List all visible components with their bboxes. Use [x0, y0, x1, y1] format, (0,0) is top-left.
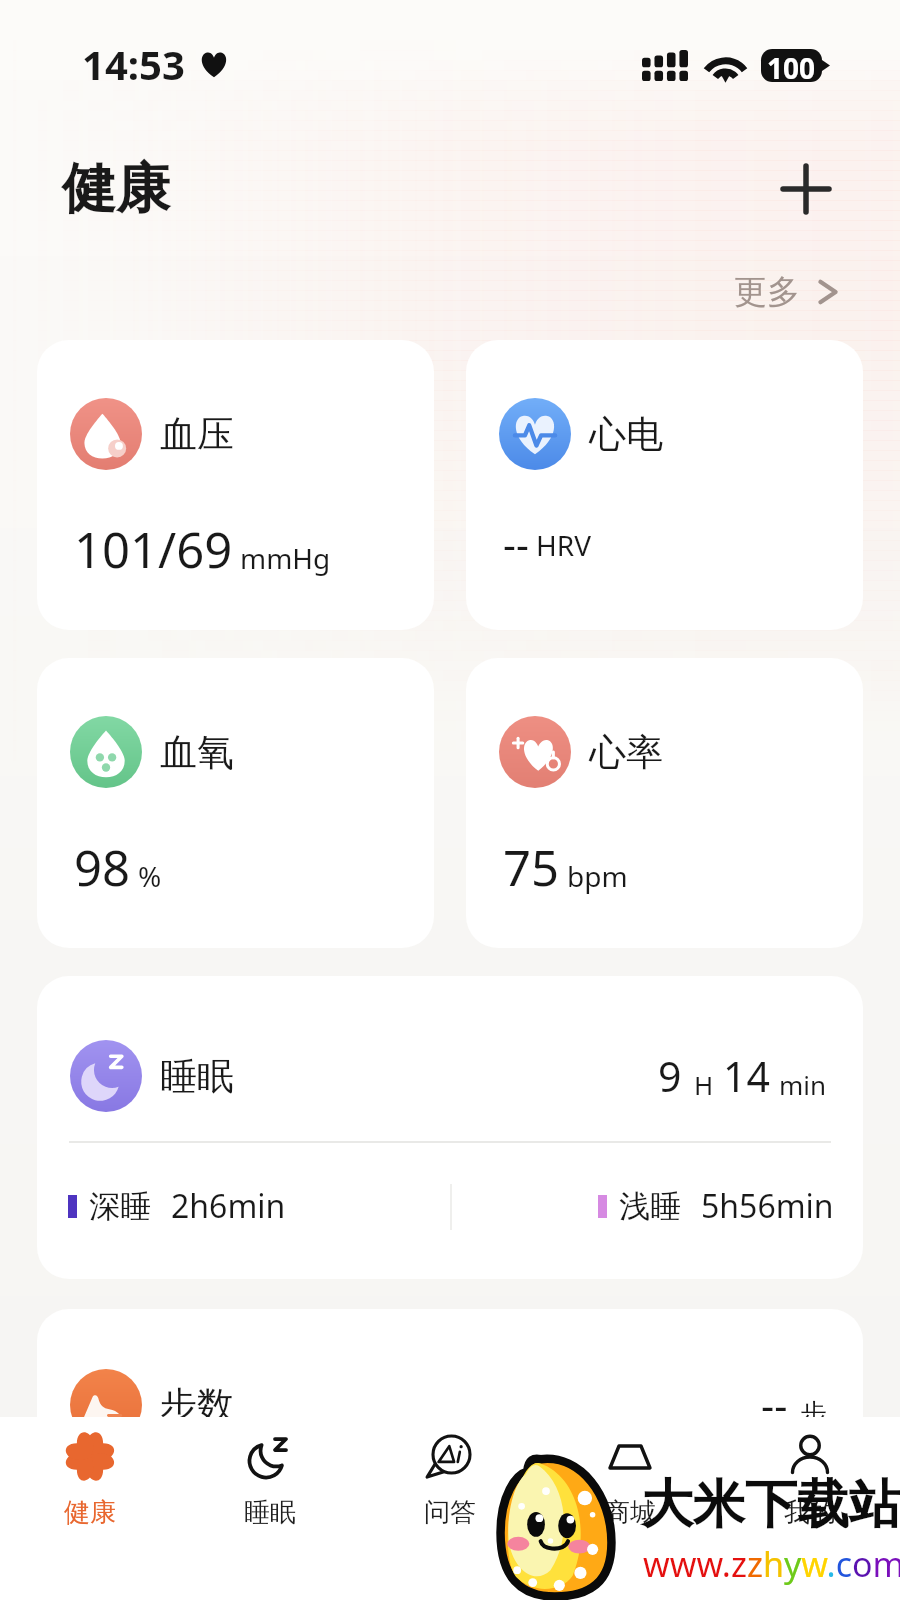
staticText: bpm — [567, 857, 628, 895]
staticText: 问答 — [424, 1496, 476, 1529]
staticText: 健康 — [62, 155, 170, 223]
button[interactable]: 血压 — [37, 340, 434, 630]
staticText: -- — [503, 516, 529, 570]
staticText: 商城 — [604, 1496, 656, 1529]
staticText: 9 — [658, 1048, 682, 1104]
button[interactable]: 我的 — [720, 1417, 900, 1529]
staticText: 浅睡 — [619, 1187, 681, 1226]
button[interactable]: 血氧 — [37, 658, 434, 948]
staticText: 睡眠 — [244, 1496, 296, 1529]
staticText: 我的 — [784, 1496, 836, 1529]
button[interactable]: 睡眠 — [180, 1417, 360, 1529]
staticText: 98 — [74, 834, 131, 901]
staticText: min — [779, 1067, 827, 1102]
staticText: H — [694, 1067, 714, 1102]
button[interactable]: 问答 — [360, 1417, 540, 1529]
staticText: 深睡 — [89, 1187, 151, 1226]
staticText: 大米下载站 — [641, 1472, 900, 1538]
staticText: -- — [761, 1377, 788, 1433]
button[interactable]: 步数 — [37, 1309, 863, 1599]
staticText: 心电 — [589, 411, 663, 458]
button[interactable]: 睡眠 — [37, 976, 863, 1279]
staticText: 75 — [503, 834, 560, 901]
staticText: HRV — [536, 526, 591, 564]
staticText: 血氧 — [160, 729, 234, 776]
button[interactable]: 心电 — [466, 340, 863, 630]
staticText: 14 — [723, 1048, 770, 1104]
button[interactable]: 更多 — [726, 261, 846, 323]
staticText: 更多 — [734, 271, 800, 313]
staticText: 睡眠 — [160, 1053, 234, 1100]
staticText: 5h56min — [701, 1184, 834, 1228]
staticText: % — [138, 857, 162, 895]
staticText: 14:53 — [82, 37, 185, 91]
staticText: 步 — [800, 1397, 827, 1431]
button[interactable]: Add — [770, 153, 842, 225]
button[interactable]: 健康 — [0, 1417, 180, 1529]
staticText: 心率 — [589, 729, 663, 776]
staticText: 101/69 — [74, 516, 233, 583]
button[interactable]: 心率 — [466, 658, 863, 948]
staticText: 血压 — [160, 411, 234, 458]
staticText: 2h6min — [171, 1184, 286, 1228]
staticText: 步数 — [160, 1382, 234, 1429]
staticText: 健康 — [64, 1496, 116, 1529]
staticText: 100 — [767, 49, 816, 82]
button[interactable]: 商城 — [540, 1417, 720, 1529]
staticText: www.zzhyw.com — [643, 1541, 900, 1587]
staticText: mmHg — [240, 539, 331, 577]
